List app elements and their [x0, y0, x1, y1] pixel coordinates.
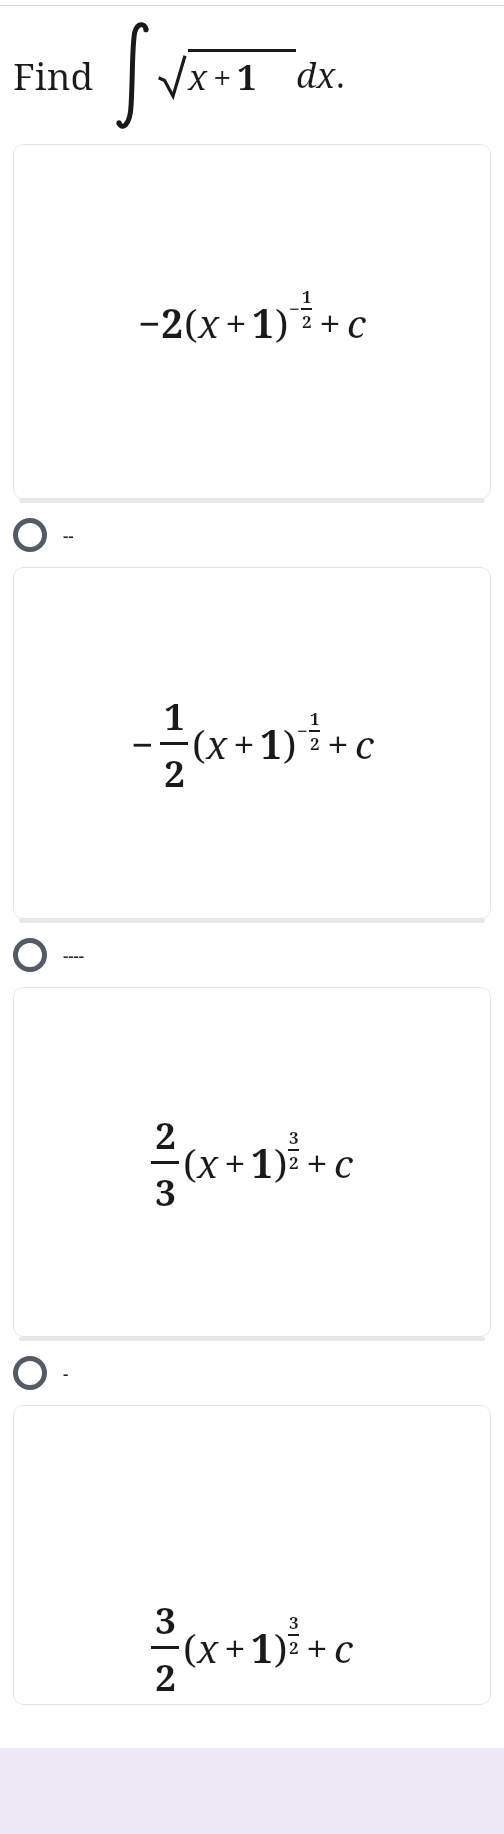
staticText: 1: [302, 285, 312, 308]
staticText: −: [297, 718, 309, 744]
button[interactable]: Select answer: [0, 512, 504, 558]
staticText: x: [188, 53, 208, 101]
staticText: −: [131, 717, 154, 770]
staticText: 3: [289, 1126, 299, 1149]
staticText: x: [197, 1136, 219, 1189]
staticText: dx: [296, 51, 336, 99]
staticText: 2: [155, 1109, 176, 1159]
staticText: 2: [302, 310, 312, 333]
staticText: −: [289, 296, 301, 322]
staticText: 2: [155, 1651, 176, 1701]
staticText: ----: [63, 944, 85, 967]
staticText: (: [192, 717, 206, 770]
button[interactable]: 2: [13, 987, 491, 1337]
staticText: 2: [289, 1636, 299, 1659]
staticText: 1: [237, 53, 257, 101]
staticText: +: [327, 717, 349, 770]
staticText: (: [184, 296, 198, 349]
staticText: +: [225, 296, 247, 349]
staticText: (: [183, 1136, 197, 1189]
button[interactable]: −: [13, 144, 491, 499]
staticText: 3: [155, 1594, 176, 1644]
staticText: ): [274, 1621, 288, 1674]
staticText: +: [213, 55, 232, 100]
staticText: 3: [289, 1611, 299, 1634]
staticText: c: [347, 296, 366, 349]
staticText: -: [63, 1362, 69, 1385]
button[interactable]: 3: [13, 1405, 491, 1705]
staticText: 3: [155, 1166, 176, 1216]
staticText: x: [206, 717, 228, 770]
staticText: 1: [251, 1136, 274, 1189]
staticText: 1: [164, 690, 185, 740]
staticText: 1: [260, 717, 283, 770]
staticText: (: [183, 1621, 197, 1674]
staticText: ): [274, 1136, 288, 1189]
other: Select answer: [13, 938, 47, 972]
other: Select answer: [13, 1356, 47, 1390]
staticText: 2: [161, 296, 184, 349]
staticText: ): [283, 717, 297, 770]
staticText: 2: [310, 732, 320, 755]
staticText: +: [306, 1136, 328, 1189]
staticText: +: [224, 1621, 246, 1674]
staticText: +: [224, 1136, 246, 1189]
staticText: +: [319, 296, 341, 349]
staticText: x: [197, 1621, 219, 1674]
button[interactable]: Select answer: [0, 932, 504, 978]
other: Select answer: [13, 518, 47, 552]
button[interactable]: −: [13, 567, 491, 919]
staticText: −: [138, 296, 161, 349]
staticText: .: [336, 51, 345, 99]
staticText: 1: [251, 1621, 274, 1674]
staticText: 2: [164, 747, 185, 797]
staticText: x: [198, 296, 220, 349]
button[interactable]: Select answer: [0, 1350, 504, 1396]
staticText: Find: [13, 50, 94, 100]
staticText: c: [334, 1136, 353, 1189]
staticText: +: [233, 717, 255, 770]
staticText: c: [355, 717, 374, 770]
staticText: ): [275, 296, 289, 349]
staticText: 1: [252, 296, 275, 349]
staticText: --: [63, 524, 74, 547]
staticText: c: [334, 1621, 353, 1674]
staticText: 2: [289, 1151, 299, 1174]
staticText: 1: [310, 707, 320, 730]
staticText: +: [306, 1621, 328, 1674]
